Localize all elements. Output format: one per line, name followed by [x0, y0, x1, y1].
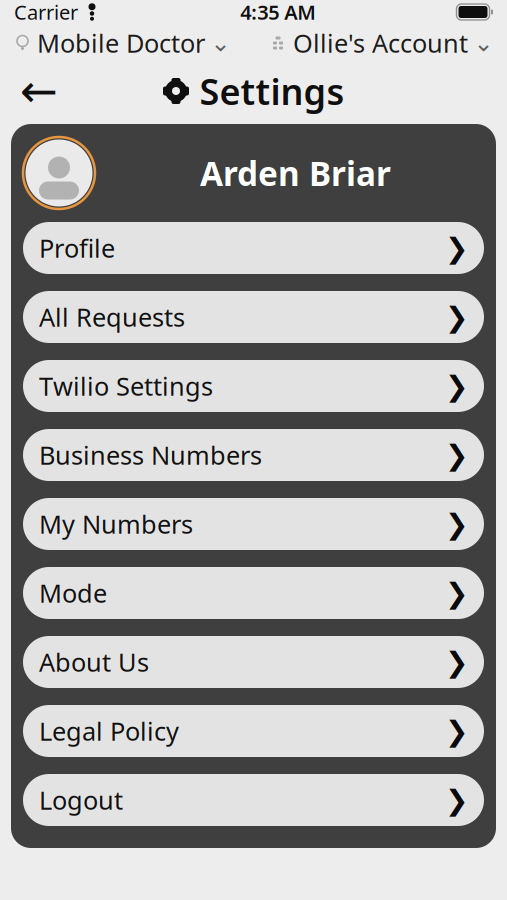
staticText: ← [20, 65, 58, 117]
button[interactable]: Mobile Doctor [16, 26, 228, 60]
staticText: Mobile Doctor [37, 26, 205, 60]
staticText: Logout [39, 783, 123, 817]
button[interactable]: Legal Policy [23, 705, 484, 757]
staticText: Legal Policy [39, 714, 179, 748]
staticText: Ollie's Account [293, 26, 468, 60]
button[interactable]: Mode [23, 567, 484, 619]
staticText: ⌄ [473, 29, 493, 57]
button[interactable]: Logout [23, 774, 484, 826]
staticText: Business Numbers [39, 438, 262, 472]
staticText: ❯ [445, 577, 468, 609]
button[interactable]: Twilio Settings [23, 360, 484, 412]
staticText: ❯ [445, 646, 468, 678]
staticText: Twilio Settings [39, 369, 213, 403]
staticText: Profile [39, 231, 115, 265]
staticText: About Us [39, 645, 149, 679]
button[interactable]: Business Numbers [23, 429, 484, 481]
button[interactable]: My Numbers [23, 498, 484, 550]
staticText: ❯ [445, 439, 468, 471]
staticText: ❯ [445, 508, 468, 540]
staticText: Settings [199, 67, 344, 115]
staticText: ⌄ [210, 29, 230, 57]
staticText: Arden Briar [200, 151, 391, 195]
staticText: ❯ [445, 715, 468, 747]
staticText: ❯ [445, 370, 468, 402]
button[interactable]: Ollie's Account [271, 26, 491, 60]
button[interactable]: About Us [23, 636, 484, 688]
staticText: Carrier [14, 0, 78, 25]
staticText: All Requests [39, 300, 185, 334]
button[interactable]: All Requests [23, 291, 484, 343]
staticText: ❯ [445, 784, 468, 816]
staticText: ❯ [445, 301, 468, 333]
button[interactable]: Back [12, 67, 66, 115]
staticText: Mode [39, 576, 107, 610]
staticText: 4:35 AM [240, 0, 316, 25]
staticText: ❯ [445, 232, 468, 264]
button[interactable]: Profile [23, 222, 484, 274]
staticText: My Numbers [39, 507, 193, 541]
